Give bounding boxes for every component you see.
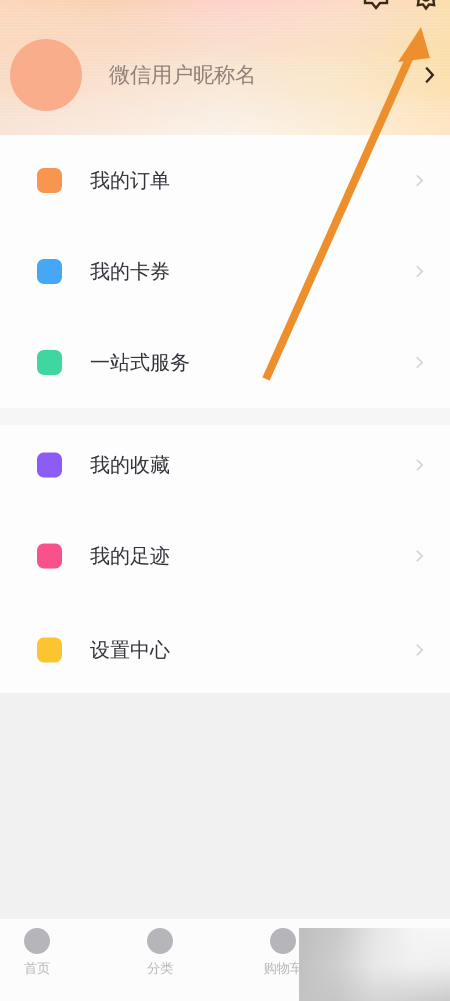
staticText: 我的: [393, 960, 419, 976]
staticText: 一站式服务: [90, 350, 190, 375]
staticText: 首页: [24, 960, 50, 976]
button[interactable]: Settings: [413, 0, 439, 10]
staticText: 我的足迹: [90, 544, 170, 568]
button[interactable]: 首页: [0, 919, 82, 976]
button[interactable]: 我的卡券: [0, 226, 450, 317]
button[interactable]: 我的订单: [0, 135, 450, 226]
button[interactable]: 我的: [361, 919, 450, 976]
staticText: 我的收藏: [90, 453, 170, 477]
button[interactable]: 设置中心: [0, 607, 450, 693]
button[interactable]: 一站式服务: [0, 317, 450, 408]
button[interactable]: 我的足迹: [0, 505, 450, 607]
button[interactable]: 我的收藏: [0, 425, 450, 505]
button[interactable]: 购物车: [238, 919, 328, 976]
staticText: 分类: [147, 960, 173, 976]
staticText: 购物车: [263, 960, 302, 976]
button[interactable]: 微信用户昵称名: [0, 0, 450, 72]
staticText: 我的订单: [90, 168, 170, 193]
staticText: 设置中心: [90, 638, 170, 662]
button[interactable]: Messages: [363, 0, 389, 10]
staticText: 微信用户昵称名: [109, 62, 256, 88]
button[interactable]: 分类: [115, 919, 205, 976]
staticText: 我的卡券: [90, 259, 170, 284]
